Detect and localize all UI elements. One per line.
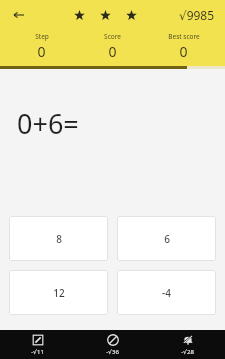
staticText: 0 [108, 42, 117, 61]
staticText: -√36 [106, 348, 119, 356]
staticText: 6 [164, 232, 170, 246]
button[interactable]: 6 [117, 216, 216, 261]
staticText: 8 [56, 232, 62, 246]
staticText: 0+6= [17, 105, 79, 142]
button[interactable]: 12 [9, 270, 108, 315]
staticText: Best score [168, 32, 200, 41]
button[interactable]: Back [8, 4, 30, 26]
button[interactable]: Mute [150, 331, 225, 359]
staticText: -√11 [31, 348, 44, 356]
staticText: Step [35, 32, 49, 41]
staticText: √9985 [179, 7, 215, 23]
button[interactable]: Hint [0, 331, 75, 359]
staticText: Score [104, 32, 121, 41]
staticText: -4 [162, 286, 171, 300]
staticText: 0 [179, 42, 188, 61]
button[interactable]: Skip [75, 331, 150, 359]
button[interactable]: 8 [9, 216, 108, 261]
staticText: 12 [53, 286, 65, 300]
button[interactable]: -4 [117, 270, 216, 315]
staticText: -√28 [181, 348, 194, 356]
staticText: 0 [37, 42, 46, 61]
